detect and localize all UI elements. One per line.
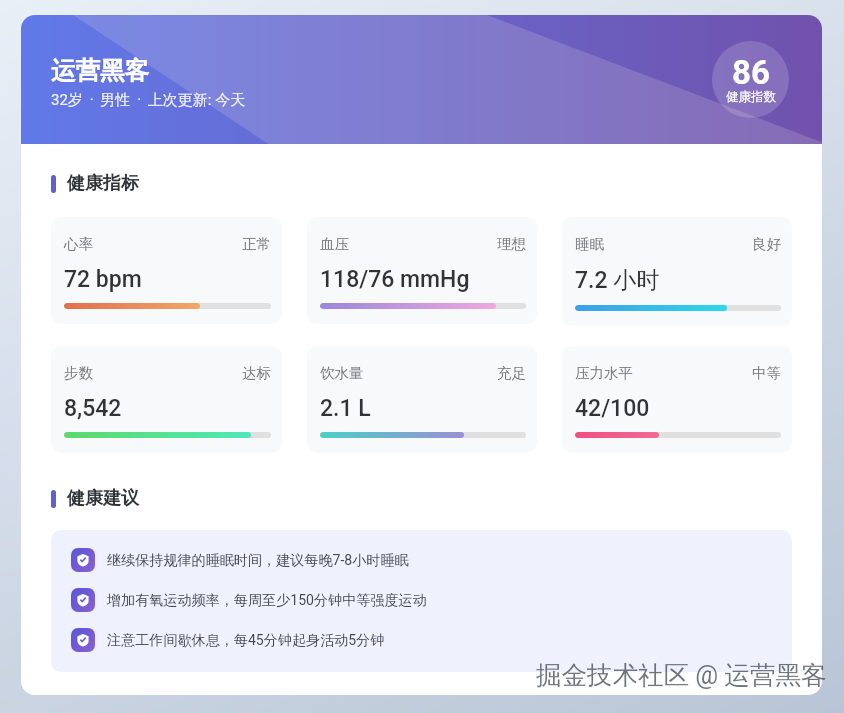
button[interactable]: 继续保持规律的睡眠时间，建议每晚7-8小时睡眠 xyxy=(51,540,792,580)
staticText: 达标 xyxy=(242,364,271,382)
staticText: 增加有氧运动频率，每周至少150分钟中等强度运动 xyxy=(107,591,427,609)
button[interactable]: 饮水量 xyxy=(307,346,537,453)
button[interactable]: 血压 xyxy=(307,217,537,324)
button[interactable]: 心率 xyxy=(51,217,282,324)
staticText: 42/100 xyxy=(575,395,650,422)
staticText: 血压 xyxy=(320,235,349,253)
button[interactable]: 增加有氧运动频率，每周至少150分钟中等强度运动 xyxy=(51,580,792,620)
staticText: 运营黑客 xyxy=(51,55,149,86)
staticText: 充足 xyxy=(497,364,526,382)
staticText: 118/76 mmHg xyxy=(320,266,470,293)
staticText: 良好 xyxy=(752,235,781,253)
staticText: 健康指数 xyxy=(726,89,776,105)
staticText: 86 xyxy=(732,53,770,92)
button[interactable]: 压力水平 xyxy=(562,346,792,453)
button[interactable]: 健康指数 86 xyxy=(712,41,789,118)
staticText: 睡眠 xyxy=(575,235,604,253)
staticText: 心率 xyxy=(64,235,93,253)
staticText: 2.1 L xyxy=(320,395,371,422)
staticText: 7.2 小时 xyxy=(575,266,660,295)
staticText: 72 bpm xyxy=(64,266,142,293)
button[interactable]: 睡眠 xyxy=(562,217,792,326)
staticText: 注意工作间歇休息，每45分钟起身活动5分钟 xyxy=(107,631,385,649)
staticText: 正常 xyxy=(242,235,271,253)
staticText: 健康指标 xyxy=(67,172,139,195)
button[interactable]: 步数 xyxy=(51,346,282,453)
button[interactable]: 注意工作间歇休息，每45分钟起身活动5分钟 xyxy=(51,620,792,660)
staticText: 步数 xyxy=(64,364,93,382)
staticText: 8,542 xyxy=(64,395,122,422)
staticText: 中等 xyxy=(752,364,781,382)
button[interactable]: 运营黑客 xyxy=(21,50,246,110)
staticText: 健康建议 xyxy=(67,487,139,510)
staticText: 32岁 · 男性 · 上次更新: 今天 xyxy=(51,91,246,110)
staticText: 继续保持规律的睡眠时间，建议每晚7-8小时睡眠 xyxy=(107,551,409,569)
staticText: 压力水平 xyxy=(575,364,633,382)
staticText: 掘金技术社区 @ 运营黑客 xyxy=(536,659,827,691)
staticText: 饮水量 xyxy=(320,364,364,382)
staticText: 理想 xyxy=(497,235,526,253)
